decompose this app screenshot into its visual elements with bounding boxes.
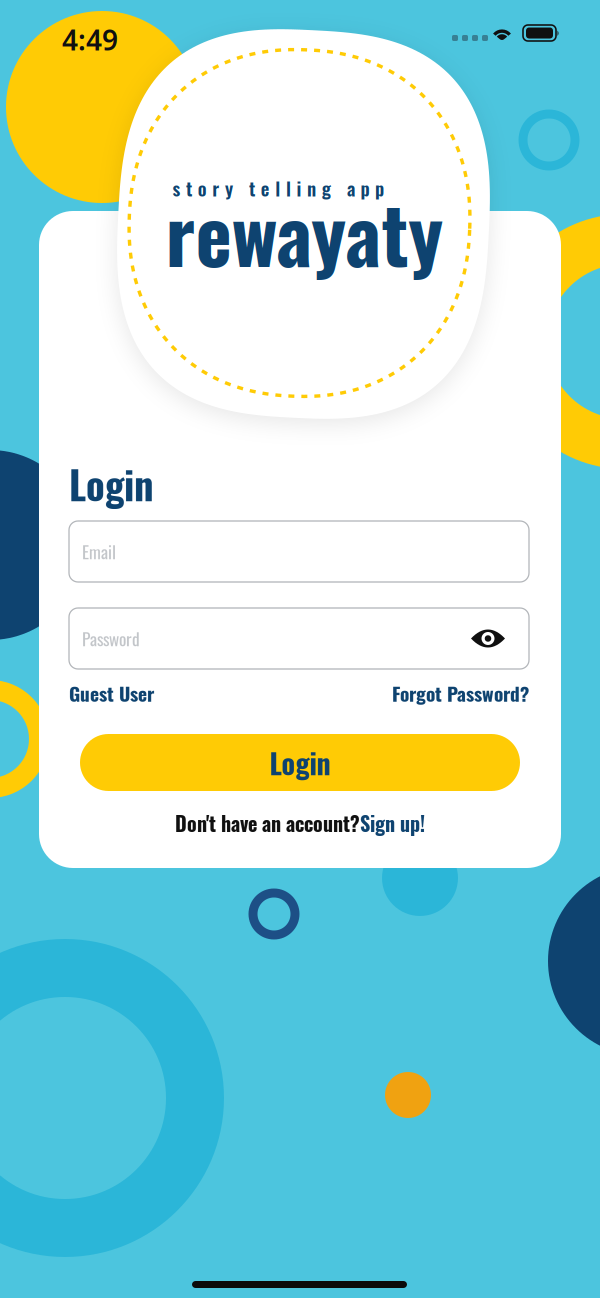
staticText: Password bbox=[82, 626, 140, 651]
button[interactable]: Email bbox=[69, 521, 529, 582]
button[interactable]: Password bbox=[69, 608, 529, 669]
button[interactable]: Forgot Password? bbox=[359, 681, 529, 705]
staticText: Forgot Password? bbox=[392, 679, 529, 707]
staticText: Sign up! bbox=[360, 808, 425, 838]
staticText: rewayaty bbox=[165, 175, 443, 289]
staticText: Email bbox=[82, 539, 116, 564]
staticText: Guest User bbox=[69, 679, 154, 707]
button[interactable]: Guest User bbox=[69, 681, 189, 705]
staticText: Login bbox=[269, 742, 330, 783]
button[interactable]: Login bbox=[80, 734, 520, 791]
staticText: 4:49 bbox=[62, 21, 118, 58]
staticText: Don't have an account? bbox=[175, 808, 360, 838]
staticText: story telling app bbox=[172, 174, 384, 202]
staticText: Login bbox=[69, 455, 154, 512]
button[interactable]: Sign up! bbox=[360, 808, 425, 838]
